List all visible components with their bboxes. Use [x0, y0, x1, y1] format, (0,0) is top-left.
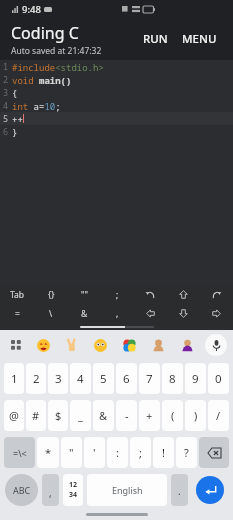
- staticText: ': [93, 445, 96, 460]
- staticText: ABC: [13, 484, 31, 496]
- staticText: "": [81, 289, 88, 301]
- staticText: 4: [77, 371, 84, 387]
- button[interactable]: RUN: [138, 27, 173, 51]
- staticText: ,: [116, 308, 119, 320]
- button[interactable]: Enter: [196, 476, 224, 504]
- button[interactable]: {}: [34, 285, 68, 304]
- button[interactable]: *: [37, 437, 59, 468]
- staticText: 1: [11, 371, 18, 387]
- button[interactable]: !: [153, 437, 174, 468]
- button[interactable]: @: [4, 400, 24, 431]
- button[interactable]: 1: [4, 363, 24, 394]
- button[interactable]: $: [48, 400, 68, 431]
- staticText: 2: [33, 371, 40, 387]
- staticText: ,: [49, 486, 52, 500]
- button[interactable]: Backspace: [199, 437, 229, 468]
- button[interactable]: ': [84, 437, 105, 468]
- button[interactable]: down: [167, 304, 200, 323]
- staticText: /: [216, 408, 221, 423]
- staticText: -: [125, 408, 129, 423]
- button[interactable]: Voice input: [205, 334, 227, 356]
- staticText: &: [81, 308, 88, 320]
- staticText: 9:48: [22, 3, 41, 16]
- staticText: $: [55, 408, 62, 423]
- button[interactable]: undo: [134, 285, 167, 304]
- staticText: ;: [139, 445, 142, 460]
- button[interactable]: English: [87, 474, 167, 506]
- staticText: 3: [55, 371, 62, 387]
- button[interactable]: Emoji 5: [176, 334, 198, 356]
- button[interactable]: Emoji 1: [60, 334, 82, 356]
- staticText: 9: [192, 371, 199, 387]
- button[interactable]: Emoji 2: [89, 334, 111, 356]
- button[interactable]: right: [200, 304, 233, 323]
- button[interactable]: redo: [200, 285, 233, 304]
- button[interactable]: _: [70, 400, 91, 431]
- button[interactable]: 0: [208, 363, 229, 394]
- button[interactable]: 3: [48, 363, 68, 394]
- staticText: :: [116, 445, 119, 460]
- staticText: 5: [100, 371, 107, 387]
- button[interactable]: :: [107, 437, 128, 468]
- staticText: ): [194, 408, 198, 423]
- button[interactable]: #: [26, 400, 46, 431]
- button[interactable]: =\<: [4, 437, 35, 468]
- button[interactable]: \: [34, 304, 68, 323]
- button[interactable]: /: [208, 400, 229, 431]
- staticText: 6: [123, 371, 130, 387]
- button[interactable]: 5: [93, 363, 114, 394]
- button[interactable]: 2: [26, 363, 46, 394]
- staticText: 7: [146, 371, 153, 387]
- button[interactable]: left: [134, 304, 167, 323]
- button[interactable]: ": [61, 437, 82, 468]
- staticText: =\<: [13, 447, 27, 459]
- staticText: }: [12, 126, 18, 138]
- button[interactable]: (: [162, 400, 183, 431]
- staticText: #: [32, 408, 40, 423]
- staticText: Auto saved at 21:47:32: [11, 45, 102, 57]
- staticText: !: [162, 445, 165, 460]
- staticText: ++: [12, 113, 23, 125]
- button[interactable]: +: [139, 400, 160, 431]
- button[interactable]: ): [185, 400, 206, 431]
- button[interactable]: Emoji 3: [118, 334, 140, 356]
- button[interactable]: Tab: [0, 285, 34, 304]
- staticText: (: [171, 408, 175, 423]
- button[interactable]: 4: [70, 363, 91, 394]
- button[interactable]: ;: [130, 437, 151, 468]
- button[interactable]: ?: [176, 437, 197, 468]
- button[interactable]: ,: [101, 304, 134, 323]
- staticText: 2: [3, 74, 9, 86]
- button[interactable]: Emoji 4: [147, 334, 169, 356]
- button[interactable]: up: [167, 285, 200, 304]
- staticText: \: [49, 308, 53, 320]
- button[interactable]: .: [171, 474, 188, 506]
- button[interactable]: =: [0, 304, 34, 323]
- button[interactable]: Numbers: [63, 474, 83, 506]
- button[interactable]: 8: [162, 363, 183, 394]
- button[interactable]: 9: [185, 363, 206, 394]
- staticText: {: [12, 87, 18, 99]
- button[interactable]: Emoji 0: [32, 334, 54, 356]
- button[interactable]: &: [68, 304, 101, 323]
- button[interactable]: 6: [116, 363, 137, 394]
- staticText: +: [146, 408, 153, 423]
- button[interactable]: ,: [42, 474, 59, 506]
- button[interactable]: &: [93, 400, 114, 431]
- staticText: Tab: [10, 289, 25, 301]
- button[interactable]: MENU: [177, 27, 222, 51]
- staticText: ": [69, 445, 74, 460]
- button[interactable]: -: [116, 400, 137, 431]
- button[interactable]: ;: [101, 285, 134, 304]
- button[interactable]: ABC: [5, 474, 38, 506]
- button[interactable]: "": [68, 285, 101, 304]
- staticText: int a=10;: [12, 100, 61, 112]
- staticText: 3: [3, 87, 9, 99]
- staticText: RUN: [143, 31, 168, 47]
- button[interactable]: Emoji categories: [6, 335, 26, 355]
- staticText: MENU: [182, 31, 217, 47]
- button[interactable]: 7: [139, 363, 160, 394]
- staticText: @: [9, 408, 19, 423]
- staticText: 12: [69, 480, 78, 490]
- staticText: ?: [184, 445, 189, 460]
